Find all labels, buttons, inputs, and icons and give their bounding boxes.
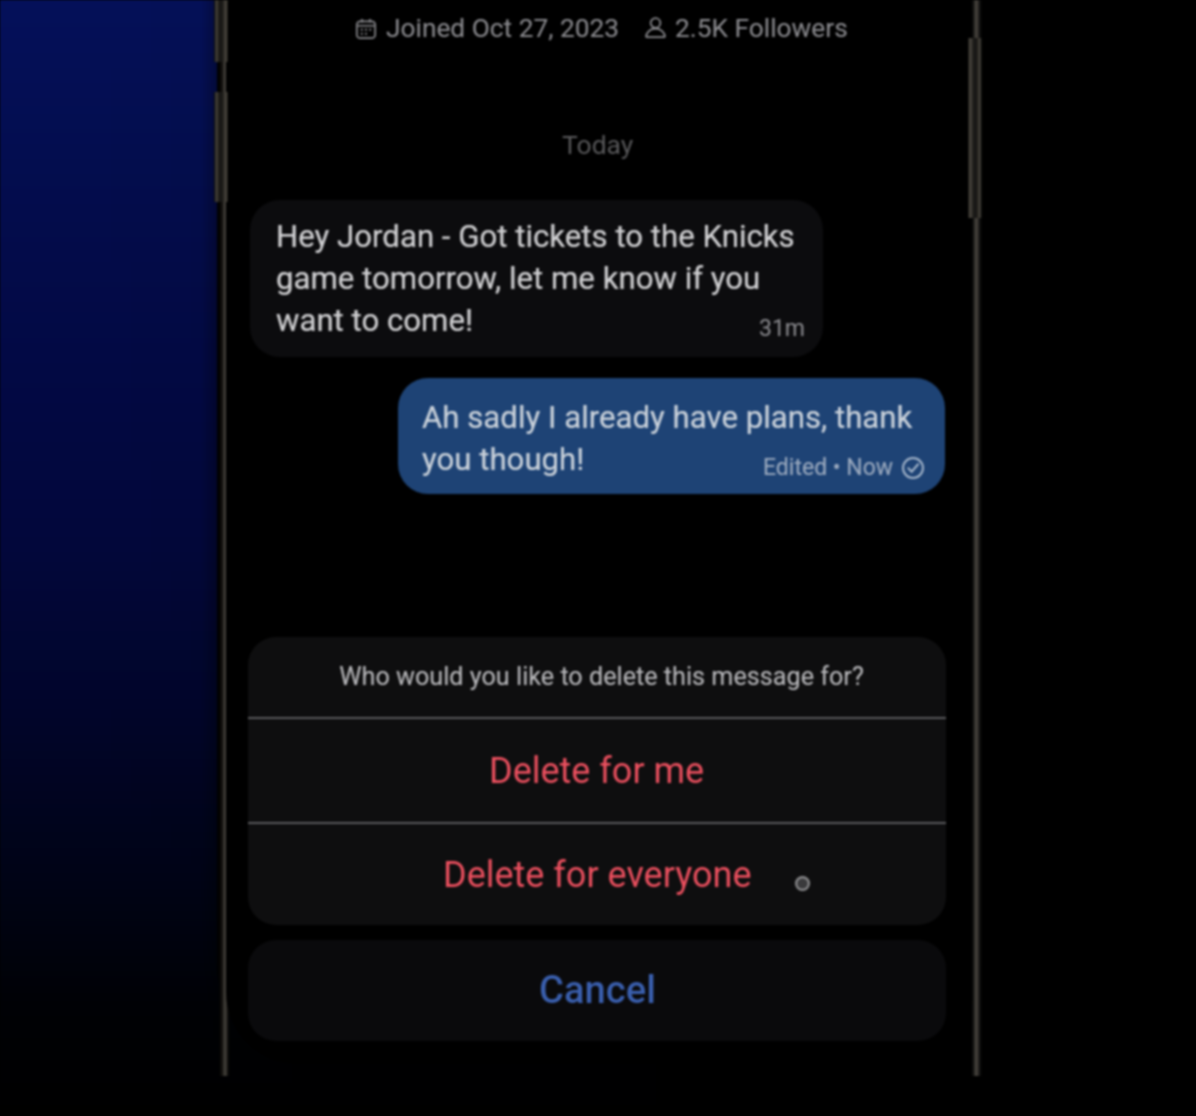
other: Followers xyxy=(645,17,666,41)
staticText: Who would you like to delete this messag… xyxy=(339,662,864,692)
staticText: you though! xyxy=(422,441,585,478)
button[interactable]: Delete for me xyxy=(248,719,946,822)
button[interactable]: Cancel xyxy=(248,940,946,1041)
button[interactable]: Ah sadly I already have plans, thank xyxy=(398,378,945,494)
staticText: 2.5K Followers xyxy=(675,13,848,44)
staticText: game tomorrow, let me know if you xyxy=(276,260,761,297)
button[interactable]: Delete for everyone xyxy=(248,824,946,925)
button[interactable]: Hey Jordan - Got tickets to the Knicks xyxy=(250,200,823,357)
staticText: Delete for me xyxy=(489,750,705,792)
staticText: Cancel xyxy=(539,968,656,1013)
staticText: Ah sadly I already have plans, thank xyxy=(422,399,913,436)
staticText: Delete for everyone xyxy=(443,854,752,896)
staticText: Edited • Now xyxy=(763,454,894,481)
staticText: Today xyxy=(562,129,634,160)
staticText: 31m xyxy=(759,315,806,342)
staticText: Hey Jordan - Got tickets to the Knicks xyxy=(276,218,795,255)
other: Joined date xyxy=(356,18,376,39)
staticText: Joined Oct 27, 2023 xyxy=(386,13,620,44)
button[interactable]: Joined date xyxy=(356,13,848,44)
staticText: want to come! xyxy=(276,302,474,339)
other: Pointer xyxy=(795,876,810,891)
